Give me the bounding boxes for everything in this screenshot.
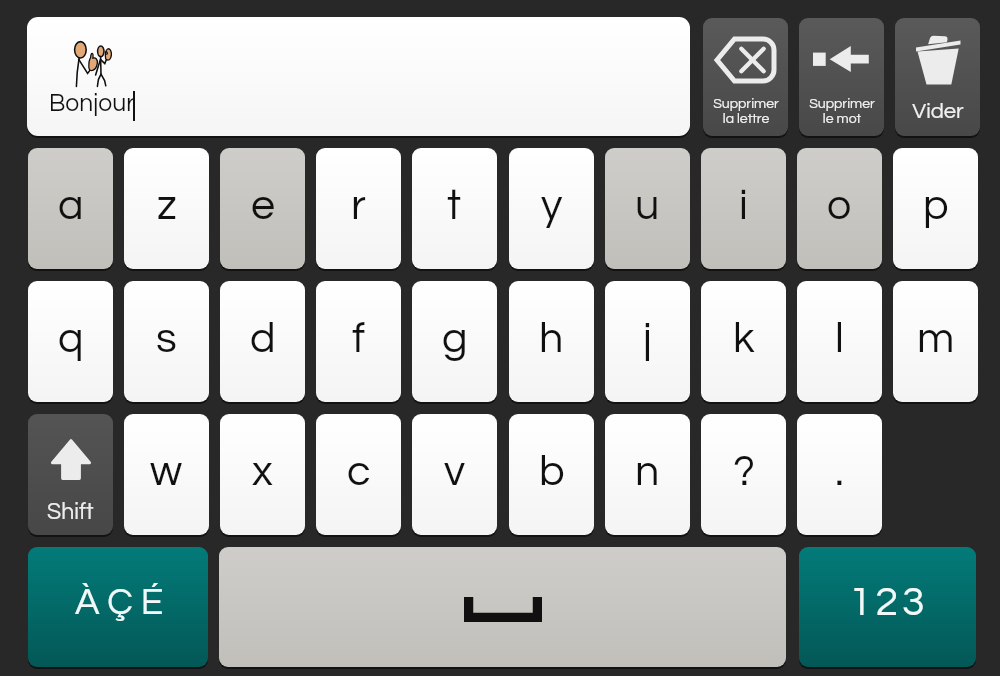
- button[interactable]: s: [124, 281, 209, 402]
- button[interactable]: Majuscule: [28, 414, 113, 535]
- staticText: .: [835, 450, 844, 494]
- button[interactable]: p: [893, 148, 978, 269]
- button[interactable]: c: [316, 414, 401, 535]
- button[interactable]: n: [605, 414, 690, 535]
- staticText: y: [541, 184, 563, 228]
- button[interactable]: m: [893, 281, 978, 402]
- staticText: w: [150, 450, 183, 494]
- staticText: d: [250, 317, 276, 361]
- staticText: h: [539, 317, 564, 361]
- button[interactable]: k: [701, 281, 786, 402]
- staticText: s: [156, 317, 177, 361]
- staticText: u: [635, 184, 660, 228]
- button[interactable]: Supprimer le mot: [799, 18, 884, 136]
- button[interactable]: ?: [701, 414, 786, 535]
- staticText: b: [539, 450, 565, 494]
- button[interactable]: r: [316, 148, 401, 269]
- button[interactable]: i: [701, 148, 786, 269]
- staticText: i: [739, 184, 748, 228]
- button[interactable]: e: [220, 148, 305, 269]
- button[interactable]: z: [124, 148, 209, 269]
- button[interactable]: Zone de texte: [27, 17, 690, 136]
- staticText: Vider: [912, 100, 964, 123]
- button[interactable]: o: [797, 148, 882, 269]
- staticText: Bonjour: [49, 91, 135, 116]
- staticText: c: [347, 450, 371, 494]
- button[interactable]: h: [509, 281, 594, 402]
- button[interactable]: a: [28, 148, 113, 269]
- staticText: o: [827, 184, 852, 228]
- button[interactable]: d: [220, 281, 305, 402]
- staticText: n: [635, 450, 660, 494]
- staticText: Supprimer le mot: [809, 97, 875, 125]
- staticText: t: [447, 184, 462, 228]
- button[interactable]: 123: [799, 547, 976, 667]
- staticText: À Ç É: [75, 584, 164, 622]
- button[interactable]: x: [220, 414, 305, 535]
- button[interactable]: v: [412, 414, 497, 535]
- staticText: f: [352, 317, 366, 361]
- staticText: m: [917, 317, 955, 361]
- staticText: q: [58, 317, 84, 361]
- button[interactable]: Supprimer la lettre: [703, 18, 788, 136]
- staticText: e: [251, 184, 275, 228]
- staticText: k: [733, 317, 755, 361]
- button[interactable]: l: [797, 281, 882, 402]
- button[interactable]: b: [509, 414, 594, 535]
- button[interactable]: Espace: [219, 547, 786, 667]
- button[interactable]: y: [509, 148, 594, 269]
- staticText: j: [643, 317, 652, 361]
- staticText: v: [444, 450, 466, 494]
- staticText: a: [58, 184, 84, 228]
- button[interactable]: g: [412, 281, 497, 402]
- staticText: g: [442, 317, 468, 361]
- button[interactable]: w: [124, 414, 209, 535]
- staticText: z: [157, 184, 177, 228]
- button[interactable]: f: [316, 281, 401, 402]
- staticText: r: [351, 184, 366, 228]
- staticText: ?: [733, 450, 755, 494]
- staticText: l: [835, 317, 844, 361]
- button[interactable]: Vider: [895, 18, 980, 136]
- staticText: 123: [849, 581, 929, 623]
- button[interactable]: t: [412, 148, 497, 269]
- staticText: x: [252, 450, 273, 494]
- button[interactable]: q: [28, 281, 113, 402]
- staticText: p: [923, 184, 949, 228]
- staticText: Shift: [47, 500, 94, 524]
- button[interactable]: u: [605, 148, 690, 269]
- button[interactable]: À Ç É: [28, 547, 208, 667]
- button[interactable]: j: [605, 281, 690, 402]
- button[interactable]: .: [797, 414, 882, 535]
- staticText: Supprimer la lettre: [713, 97, 779, 125]
